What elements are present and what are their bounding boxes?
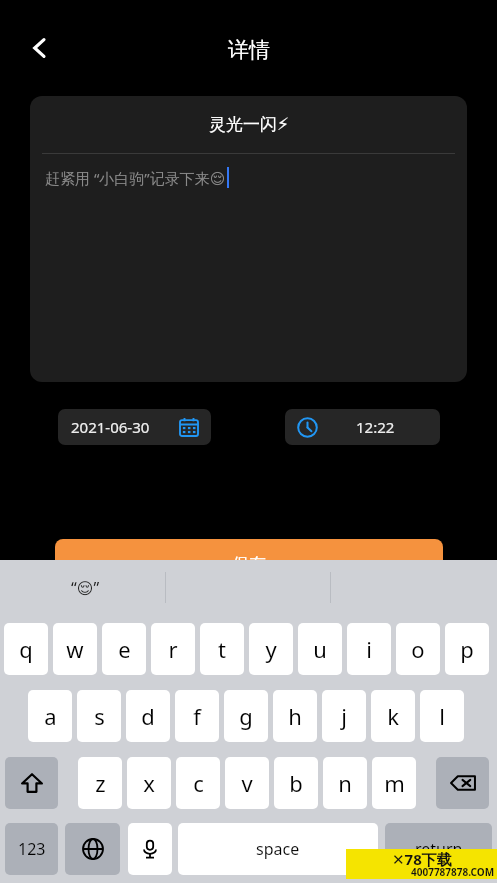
staticText: m	[384, 768, 405, 798]
staticText: r	[168, 634, 178, 664]
staticText: t	[218, 634, 226, 664]
staticText: “😌”	[71, 577, 100, 599]
staticText: 12:22	[356, 417, 395, 437]
button[interactable]: y	[249, 623, 293, 675]
button[interactable]: e	[102, 623, 146, 675]
staticText: p	[460, 634, 474, 664]
staticText: c	[193, 768, 204, 798]
staticText: s	[94, 701, 105, 731]
staticText: 详情	[228, 37, 270, 63]
button[interactable]: n	[323, 757, 367, 809]
button[interactable]: o	[396, 623, 440, 675]
button[interactable]: v	[225, 757, 269, 809]
button[interactable]: 2021-06-30	[58, 409, 211, 445]
button[interactable]: i	[347, 623, 391, 675]
button[interactable]: Dictate	[128, 823, 172, 875]
button[interactable]: l	[420, 690, 464, 742]
button[interactable]: g	[224, 690, 268, 742]
staticText: u	[313, 634, 327, 664]
staticText: 2021-06-30	[71, 417, 150, 437]
button[interactable]: p	[445, 623, 489, 675]
staticText: w	[66, 634, 84, 664]
staticText: k	[387, 701, 399, 731]
staticText: 保存	[232, 554, 266, 575]
button[interactable]: d	[126, 690, 170, 742]
staticText: 123	[18, 838, 46, 860]
button[interactable]: “😌”	[40, 560, 130, 615]
staticText: x	[143, 768, 155, 798]
button[interactable]: s	[77, 690, 121, 742]
staticText: o	[411, 634, 425, 664]
staticText: a	[44, 701, 57, 731]
button[interactable]: Backspace	[436, 757, 489, 809]
button[interactable]: b	[274, 757, 318, 809]
staticText: v	[241, 768, 253, 798]
button[interactable]: q	[4, 623, 48, 675]
button[interactable]: m	[372, 757, 416, 809]
button[interactable]: h	[273, 690, 317, 742]
staticText: 赶紧用 “小白驹”记录下来😌	[45, 168, 226, 188]
staticText: ✕78下载	[392, 849, 452, 869]
staticText: j	[341, 701, 347, 731]
button[interactable]: x	[127, 757, 171, 809]
button[interactable]: z	[78, 757, 122, 809]
button[interactable]: f	[175, 690, 219, 742]
button[interactable]: space	[178, 823, 378, 875]
staticText: return	[415, 838, 463, 860]
staticText: b	[289, 768, 303, 798]
button[interactable]: u	[298, 623, 342, 675]
button[interactable]: Back	[18, 26, 62, 70]
staticText: e	[118, 634, 131, 664]
button[interactable]: Shift	[5, 757, 58, 809]
staticText: y	[265, 634, 277, 664]
staticText: 4007787878.COM	[411, 865, 495, 879]
button[interactable]: 123	[5, 823, 58, 875]
staticText: i	[366, 634, 372, 664]
staticText: 灵光一闪⚡	[209, 114, 289, 135]
staticText: n	[338, 768, 352, 798]
button[interactable]: j	[322, 690, 366, 742]
button[interactable]: a	[28, 690, 72, 742]
staticText: l	[439, 701, 445, 731]
staticText: h	[288, 701, 302, 731]
button[interactable]: 赶紧用 “小白驹”记录下来😌	[30, 154, 467, 382]
staticText: d	[141, 701, 155, 731]
button[interactable]: r	[151, 623, 195, 675]
staticText: g	[239, 701, 253, 731]
button[interactable]: Change keyboard	[65, 823, 120, 875]
button[interactable]: w	[53, 623, 97, 675]
staticText: f	[193, 701, 201, 731]
staticText: space	[256, 838, 300, 860]
staticText: q	[19, 634, 33, 664]
staticText: z	[95, 768, 106, 798]
button[interactable]: 12:22	[285, 409, 440, 445]
button[interactable]: c	[176, 757, 220, 809]
button[interactable]: return	[385, 823, 492, 875]
button[interactable]: 灵光一闪⚡	[30, 96, 467, 153]
button[interactable]: k	[371, 690, 415, 742]
button[interactable]: t	[200, 623, 244, 675]
button[interactable]: 保存	[55, 539, 443, 589]
